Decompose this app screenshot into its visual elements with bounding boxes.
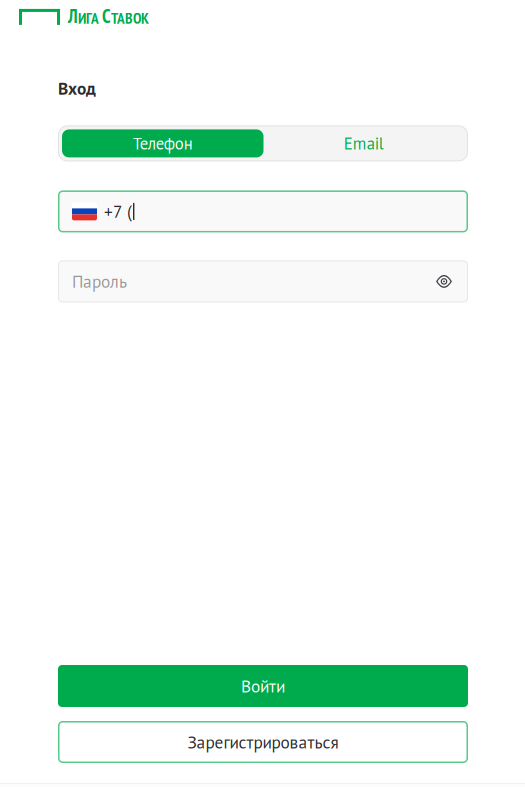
staticText: С [102, 4, 111, 28]
staticText: Л [68, 4, 78, 28]
button[interactable]: Показать пароль [436, 275, 452, 288]
button[interactable]: Войти [58, 665, 468, 707]
staticText: Вход [58, 77, 96, 99]
staticText: Пароль [72, 270, 127, 293]
staticText: Зарегистрироваться [187, 731, 338, 753]
staticText: +7 ( [104, 200, 132, 223]
staticText: Email [344, 133, 384, 154]
button[interactable]: Телефон [62, 129, 263, 157]
staticText: Войти [241, 675, 285, 697]
staticText: ТАВОК [111, 8, 149, 28]
staticText: ИГА [78, 8, 99, 28]
button[interactable]: Зарегистрироваться [58, 721, 468, 763]
staticText: Телефон [133, 133, 193, 154]
button[interactable]: Email [263, 129, 464, 157]
